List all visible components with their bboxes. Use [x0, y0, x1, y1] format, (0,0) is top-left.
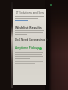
- button[interactable]: Wishlist Results: [15, 25, 42, 30]
- button[interactable]: Toggle: [39, 47, 42, 50]
- button[interactable]: Anytime Pickup: [15, 46, 40, 50]
- staticText: Anytime Pickup: [15, 46, 40, 50]
- button[interactable]: Do I Need Coronavirus Insurance: [15, 38, 48, 42]
- staticText: IT Solutions and Services: [16, 11, 44, 15]
- staticText: Do I Need Coronavirus Insurance: [15, 38, 48, 42]
- button[interactable]: IT Solutions and Services: [16, 11, 44, 15]
- staticText: Wishlist Results: [15, 25, 42, 30]
